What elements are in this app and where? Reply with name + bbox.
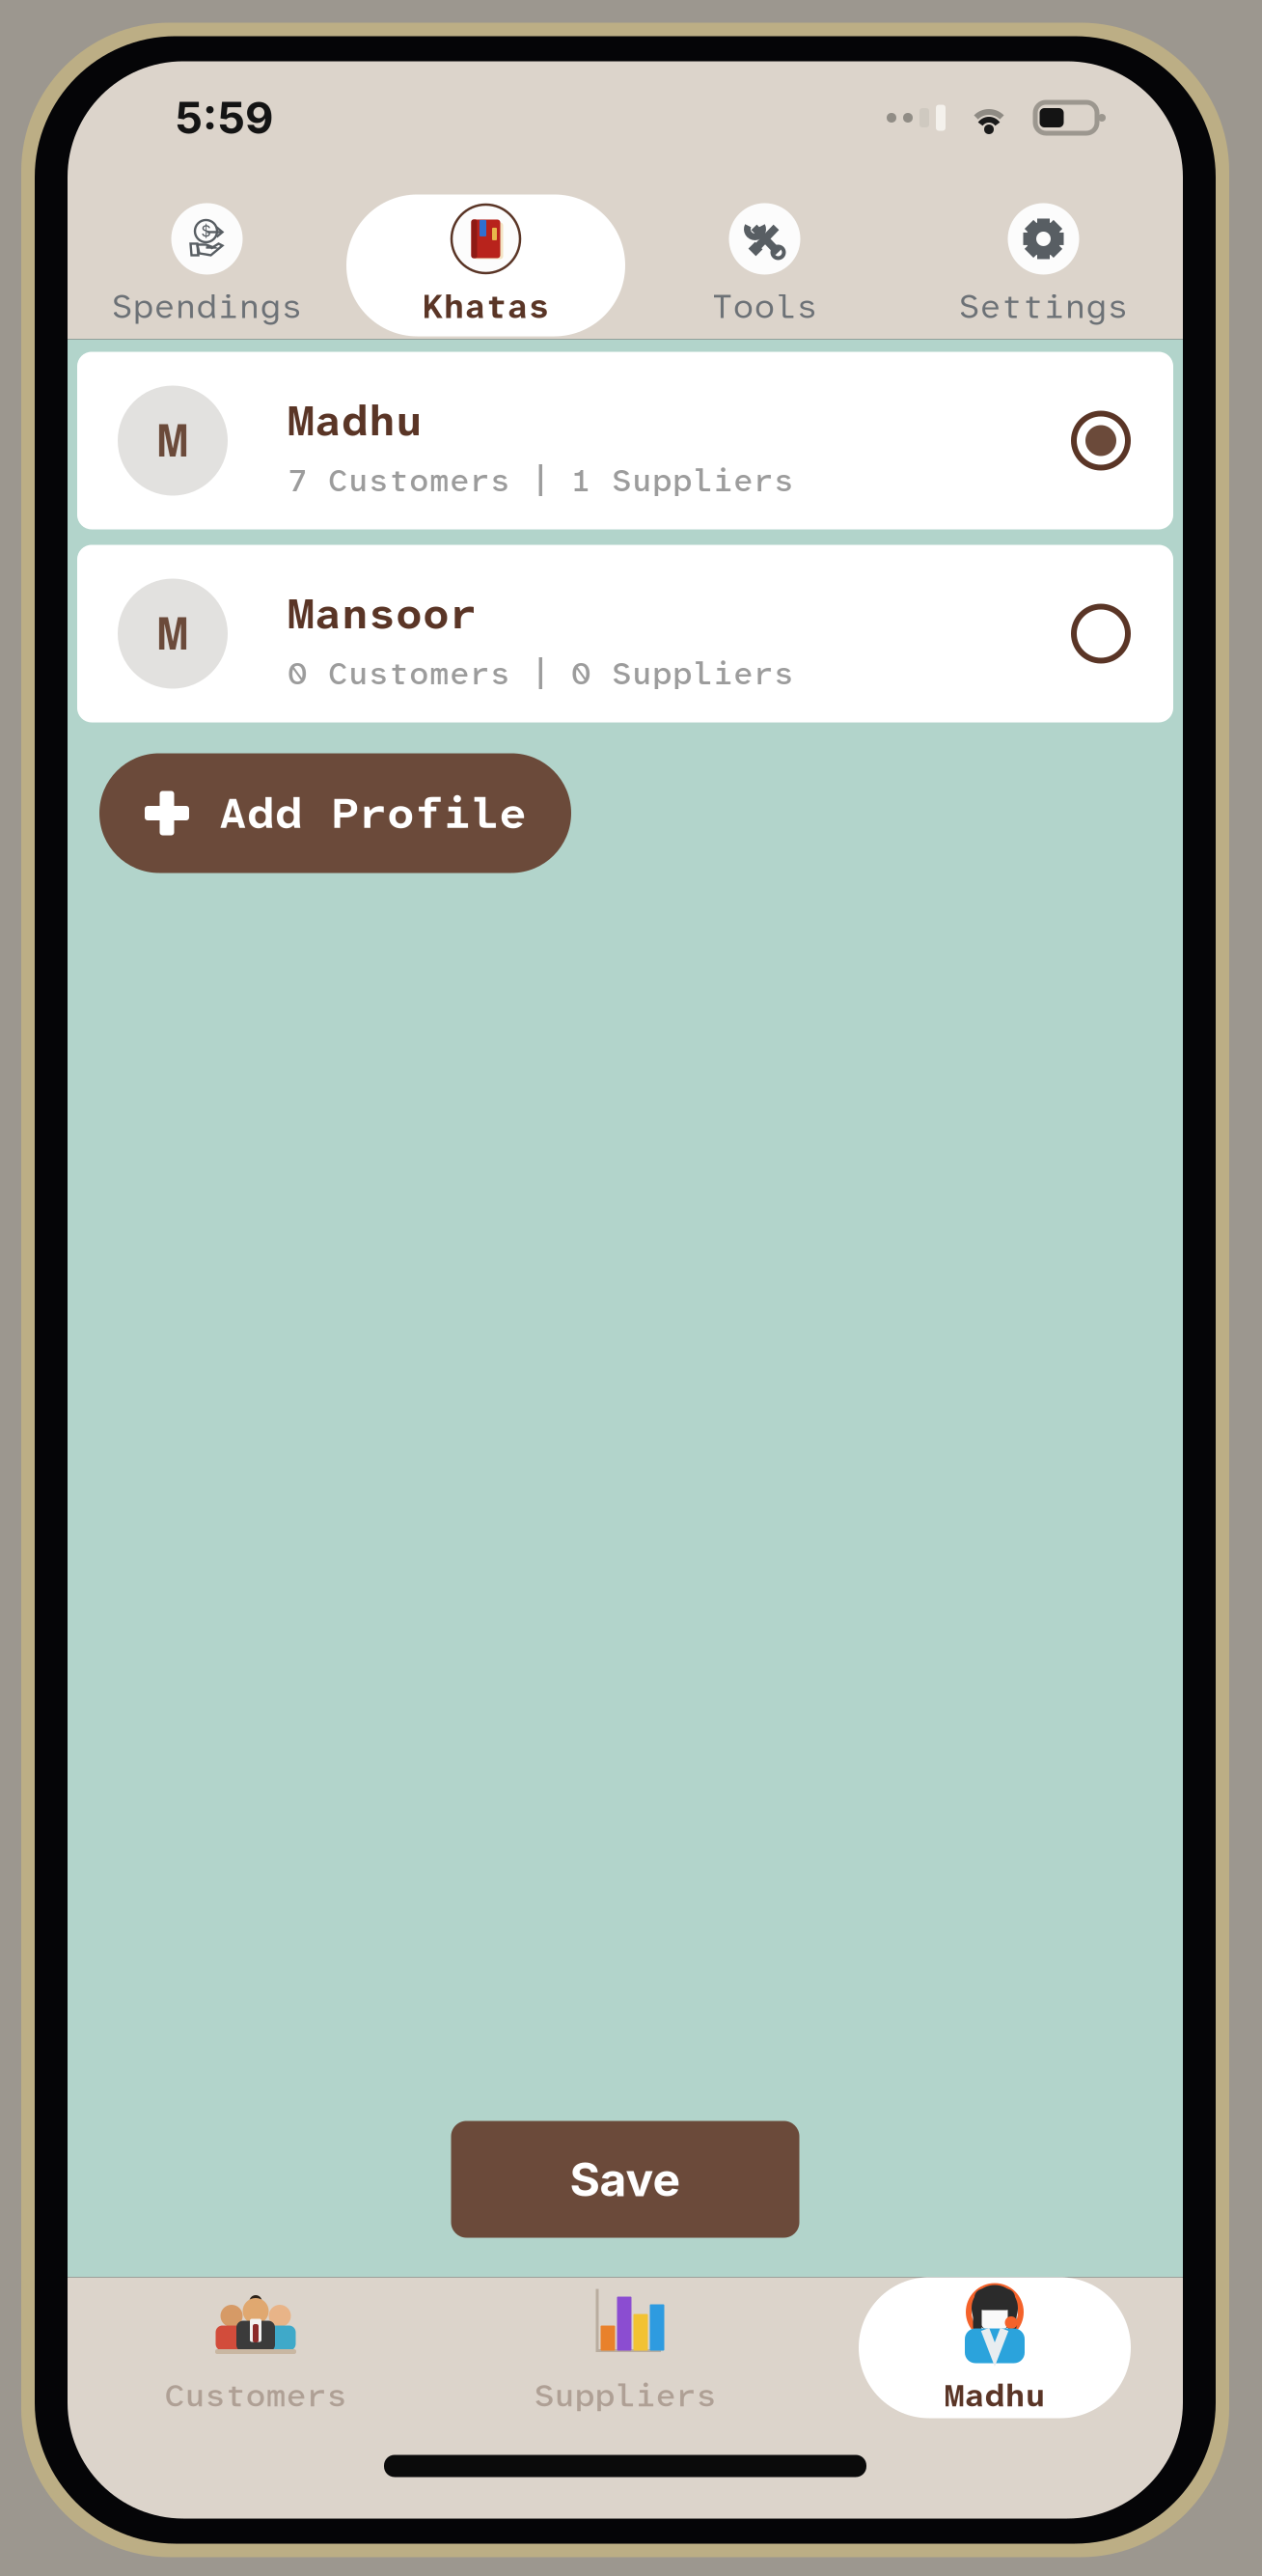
button[interactable]: M xyxy=(77,352,1173,529)
staticText: M xyxy=(157,409,188,472)
staticText: 7 Customers | 1 Suppliers xyxy=(288,460,794,501)
staticText: Add Profile xyxy=(219,785,527,842)
button[interactable]: $ xyxy=(68,194,346,336)
button[interactable]: Settings xyxy=(904,194,1183,336)
staticText: M xyxy=(157,602,188,665)
staticText: Madhu xyxy=(288,394,423,449)
staticText: 5:59 xyxy=(175,91,273,144)
staticText: Mansoor xyxy=(288,587,477,642)
staticText: $ xyxy=(201,222,211,241)
staticText: 0 Customers | 0 Suppliers xyxy=(288,653,794,694)
staticText: Settings xyxy=(959,285,1128,329)
button[interactable]: Save xyxy=(451,2121,799,2238)
button[interactable]: M xyxy=(77,545,1173,722)
staticText: Madhu xyxy=(944,2375,1045,2417)
button[interactable]: Khatas xyxy=(346,194,625,336)
staticText: Suppliers xyxy=(534,2375,716,2417)
button[interactable]: Suppliers xyxy=(489,2277,761,2418)
staticText: Spendings xyxy=(111,285,302,329)
button[interactable]: Tools xyxy=(625,194,904,336)
button[interactable]: Add Profile xyxy=(99,753,571,873)
staticText: Customers xyxy=(165,2375,347,2417)
button[interactable]: Customers xyxy=(120,2277,392,2418)
staticText: Save xyxy=(570,2151,681,2207)
button[interactable]: Madhu xyxy=(859,2277,1131,2418)
staticText: Tools xyxy=(712,285,818,329)
staticText: Khatas xyxy=(422,285,549,329)
